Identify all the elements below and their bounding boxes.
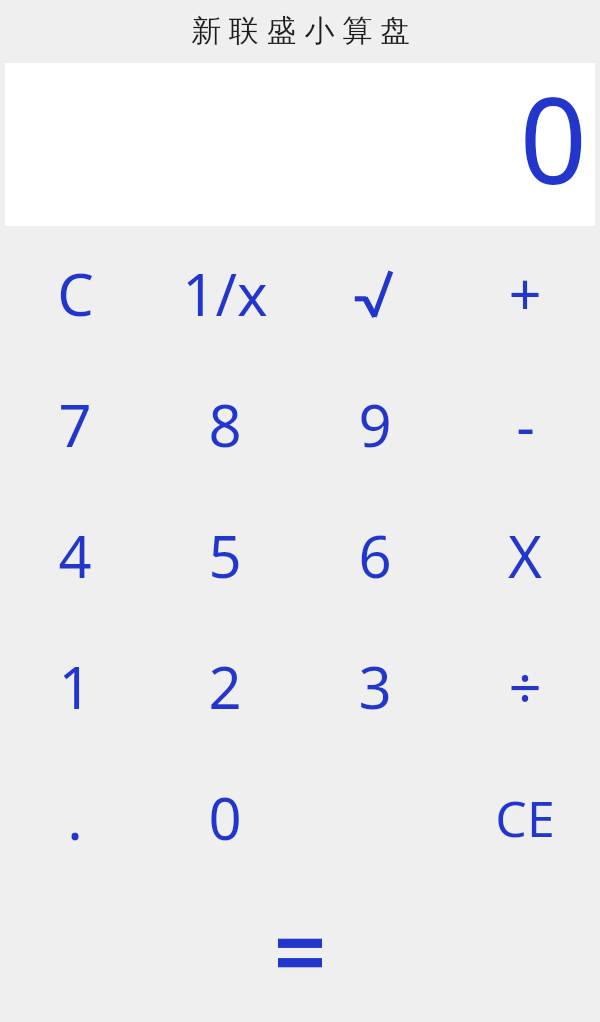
button[interactable]: - <box>450 359 600 490</box>
button[interactable]: 8 <box>150 359 300 490</box>
staticText: 6 <box>358 516 392 595</box>
staticText: 5 <box>208 516 242 595</box>
button[interactable]: 2 <box>150 621 300 752</box>
button[interactable]: 3 <box>300 621 450 752</box>
button[interactable]: 1 <box>0 621 150 752</box>
button[interactable]: Equals <box>240 908 360 998</box>
staticText: C <box>57 254 94 333</box>
button[interactable]: Square root <box>300 228 450 359</box>
staticText: CE <box>495 784 555 852</box>
button[interactable]: 1/x <box>150 228 300 359</box>
staticText: - <box>516 385 535 464</box>
button[interactable]: 5 <box>150 490 300 621</box>
staticText: 3 <box>358 647 392 726</box>
staticText: 7 <box>58 385 92 464</box>
button[interactable]: 7 <box>0 359 150 490</box>
button[interactable]: 6 <box>300 490 450 621</box>
staticText: . <box>67 778 83 857</box>
button[interactable]: + <box>450 228 600 359</box>
button[interactable]: 0 <box>150 752 300 883</box>
staticText: 8 <box>208 385 242 464</box>
staticText: 9 <box>358 385 392 464</box>
button[interactable]: CE <box>450 752 600 883</box>
button[interactable]: 4 <box>0 490 150 621</box>
staticText: 0 <box>208 778 242 857</box>
staticText: + <box>508 254 542 333</box>
staticText: 新 联 盛 小 算 盘 <box>191 9 410 50</box>
staticText: X <box>508 516 542 595</box>
button[interactable]: 9 <box>300 359 450 490</box>
staticText: 2 <box>208 647 242 726</box>
staticText: 1/x <box>182 254 268 333</box>
button[interactable]: ÷ <box>450 621 600 752</box>
staticText: 0 <box>519 58 587 219</box>
staticText: 4 <box>58 516 92 595</box>
button[interactable]: C <box>0 228 150 359</box>
button[interactable]: X <box>450 490 600 621</box>
staticText: ÷ <box>508 647 542 726</box>
staticText: 1 <box>58 647 92 726</box>
button[interactable]: . <box>0 752 150 883</box>
